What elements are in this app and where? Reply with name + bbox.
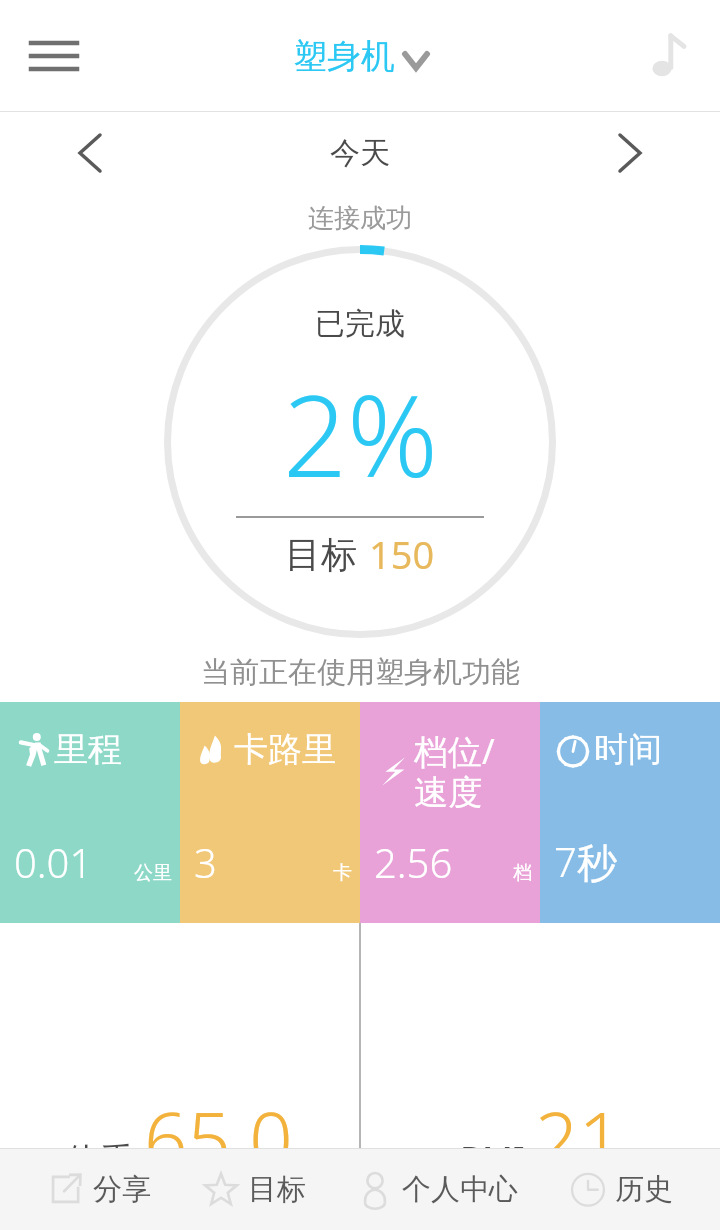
staticText: 卡 bbox=[333, 861, 352, 885]
button[interactable]: 档位/ 速度 bbox=[360, 702, 540, 923]
staticText: 3 bbox=[194, 835, 217, 889]
staticText: 2% bbox=[283, 357, 438, 510]
staticText: 塑身机 bbox=[293, 35, 395, 78]
staticText: 公里 bbox=[134, 861, 172, 885]
staticText: 目标 bbox=[285, 532, 357, 577]
staticText: 档 bbox=[513, 861, 532, 885]
staticText: 150 bbox=[369, 528, 435, 580]
staticText: 里程 bbox=[54, 728, 122, 771]
button[interactable]: BMI bbox=[361, 923, 720, 1148]
button[interactable]: 时间 bbox=[540, 702, 720, 923]
button[interactable]: Menu bbox=[18, 20, 90, 92]
staticText: BMI bbox=[460, 1136, 525, 1182]
button[interactable]: 分享 bbox=[39, 1162, 159, 1216]
button[interactable]: Music bbox=[630, 20, 702, 92]
staticText: 7秒 bbox=[554, 834, 617, 889]
staticText: 时间 bbox=[594, 728, 662, 771]
staticText: 21 bbox=[535, 1086, 622, 1190]
button[interactable]: Previous day bbox=[58, 121, 122, 185]
staticText: 今天 bbox=[330, 134, 390, 172]
staticText: 分享 bbox=[93, 1171, 151, 1208]
staticText: 65.0 bbox=[144, 1086, 293, 1190]
staticText: 历史 bbox=[615, 1171, 673, 1208]
staticText: 卡路里 bbox=[234, 728, 336, 771]
button[interactable]: 塑身机 bbox=[293, 35, 427, 78]
staticText: 0.01 bbox=[14, 835, 93, 889]
button[interactable]: Next day bbox=[598, 121, 662, 185]
staticText: 体重 bbox=[66, 1139, 134, 1182]
button[interactable]: 体重 bbox=[0, 923, 359, 1148]
staticText: 当前正在使用塑身机功能 bbox=[201, 654, 520, 691]
staticText: 2.56 bbox=[374, 835, 453, 889]
staticText: 已完成 bbox=[315, 305, 405, 343]
staticText: 档位/ 速度 bbox=[414, 728, 495, 814]
button[interactable]: 卡路里 bbox=[180, 702, 360, 923]
button[interactable]: 里程 bbox=[0, 702, 180, 923]
staticText: 目标 bbox=[248, 1171, 306, 1208]
button[interactable]: 历史 bbox=[561, 1162, 681, 1216]
button[interactable]: 目标 bbox=[194, 1162, 314, 1216]
button[interactable]: 个人中心 bbox=[348, 1162, 526, 1216]
staticText: 连接成功 bbox=[308, 202, 412, 235]
staticText: 个人中心 bbox=[402, 1171, 518, 1208]
